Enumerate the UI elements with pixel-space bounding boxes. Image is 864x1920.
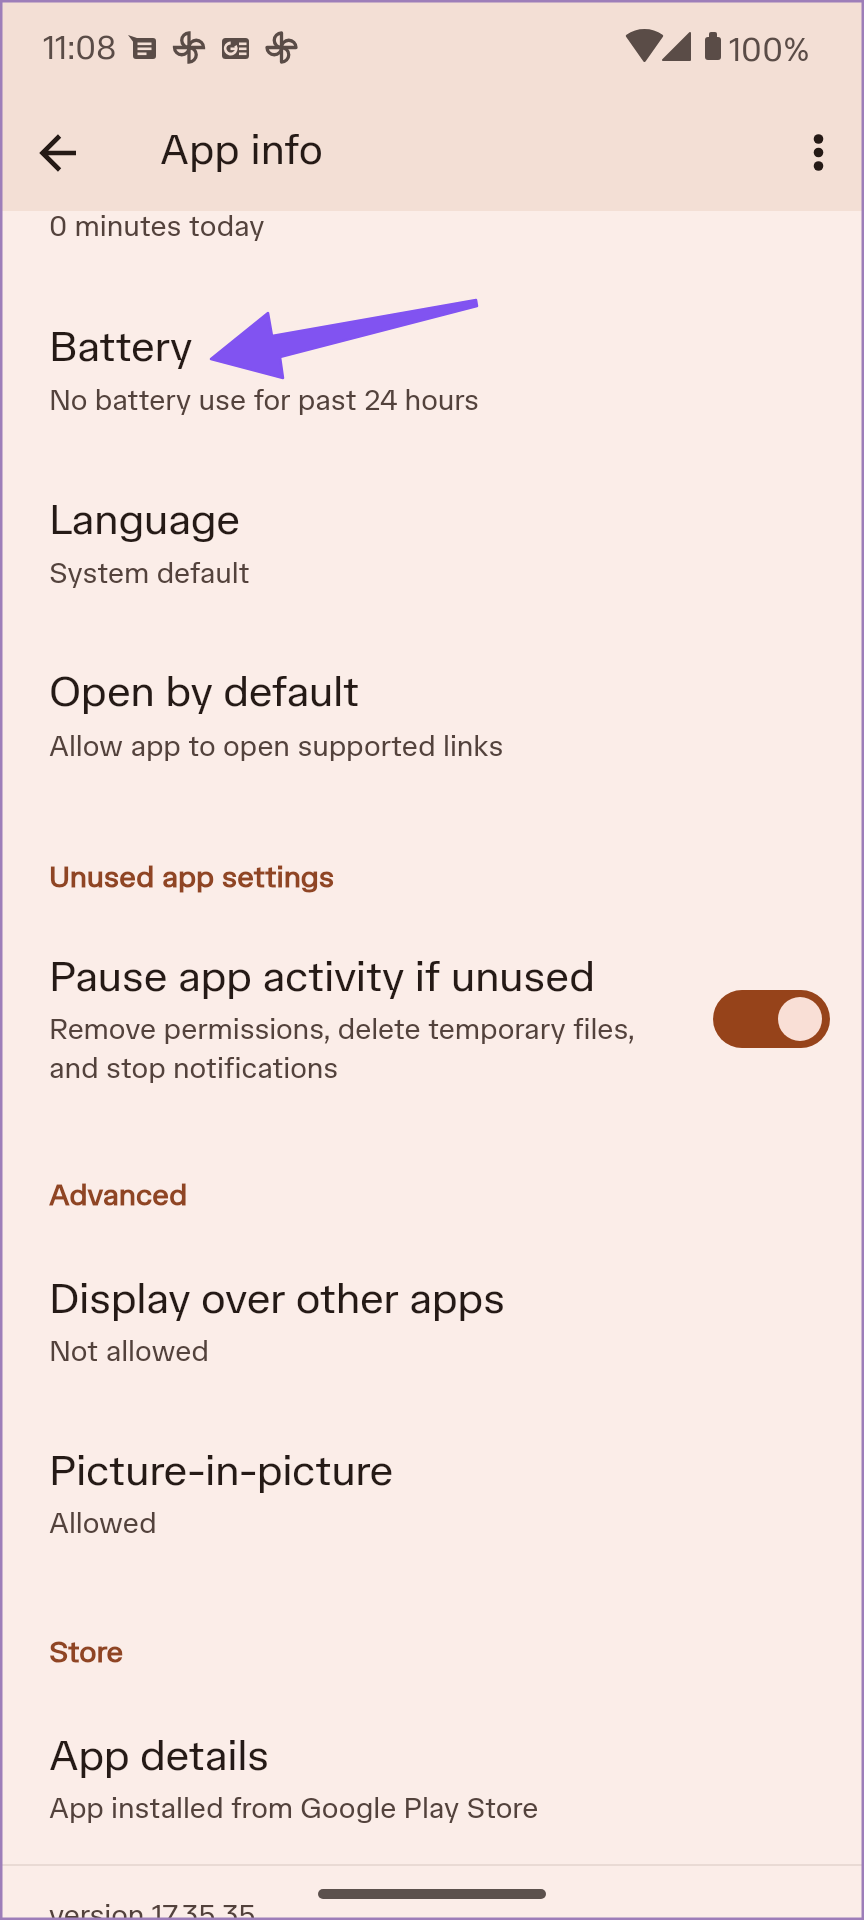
button[interactable]: Pause app activity if unused toggle bbox=[713, 990, 830, 1048]
staticText: Picture-in-picture bbox=[49, 1445, 393, 1497]
staticText: and stop notifications bbox=[49, 1051, 339, 1086]
button[interactable]: More options bbox=[786, 120, 851, 185]
staticText: 11:08 bbox=[43, 28, 117, 68]
staticText: Language bbox=[49, 494, 240, 546]
staticText: 0 minutes today bbox=[49, 209, 265, 244]
button[interactable]: Language bbox=[0, 446, 864, 618]
button[interactable]: Open by default bbox=[0, 618, 864, 800]
button[interactable]: Back bbox=[24, 118, 95, 189]
staticText: App details bbox=[49, 1730, 269, 1782]
button[interactable]: 0 minutes today bbox=[0, 211, 864, 273]
button[interactable]: Picture-in-picture bbox=[0, 1396, 864, 1568]
staticText: Allowed bbox=[49, 1506, 157, 1541]
button[interactable]: App details bbox=[0, 1691, 864, 1862]
staticText: Remove permissions, delete temporary fil… bbox=[49, 1012, 635, 1047]
staticText: Advanced bbox=[49, 1177, 188, 1213]
staticText: Open by default bbox=[49, 666, 360, 718]
staticText: No battery use for past 24 hours bbox=[49, 383, 479, 418]
staticText: Unused app settings bbox=[49, 859, 335, 895]
staticText: App info bbox=[160, 125, 323, 175]
staticText: System default bbox=[49, 556, 250, 591]
staticText: App installed from Google Play Store bbox=[49, 1791, 539, 1826]
staticText: Display over other apps bbox=[49, 1273, 505, 1325]
staticText: Store bbox=[49, 1634, 124, 1670]
button[interactable]: Display over other apps bbox=[0, 1234, 864, 1396]
staticText: Not allowed bbox=[49, 1334, 209, 1369]
staticText: Pause app activity if unused bbox=[49, 951, 595, 1003]
staticText: Battery bbox=[49, 321, 193, 373]
staticText: 100% bbox=[729, 30, 810, 70]
button[interactable]: Pause app activity if unused bbox=[0, 912, 864, 1118]
staticText: version 17.35.35 bbox=[49, 1898, 256, 1920]
button[interactable]: Battery bbox=[0, 273, 864, 446]
staticText: Allow app to open supported links bbox=[49, 729, 504, 764]
